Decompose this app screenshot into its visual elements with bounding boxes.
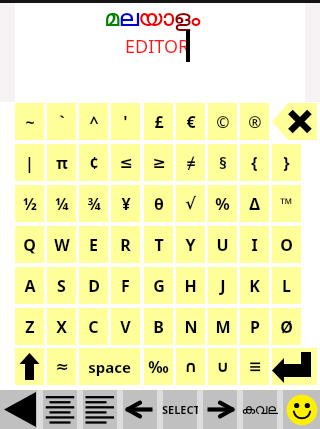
button[interactable]: ¼ bbox=[47, 185, 76, 222]
button[interactable]: P bbox=[240, 308, 269, 345]
button[interactable]: E bbox=[79, 226, 108, 263]
button[interactable]: § bbox=[208, 144, 237, 181]
button[interactable]: C bbox=[79, 308, 108, 345]
staticText: θ bbox=[154, 193, 164, 215]
staticText: £ bbox=[154, 111, 164, 133]
button[interactable]: ~ bbox=[15, 103, 44, 140]
button[interactable]: R bbox=[111, 226, 140, 263]
button[interactable]: Enter bbox=[272, 348, 317, 385]
staticText: space bbox=[88, 357, 131, 377]
button[interactable]: ≡ bbox=[240, 348, 269, 385]
staticText: കവല bbox=[242, 403, 278, 417]
button[interactable]: ≥ bbox=[144, 144, 173, 181]
button[interactable]: Shift bbox=[15, 348, 44, 385]
staticText: ½ bbox=[23, 193, 37, 215]
button[interactable]: A bbox=[15, 267, 44, 304]
button[interactable]: ∪ bbox=[208, 348, 237, 385]
button[interactable]: ½ bbox=[15, 185, 44, 222]
button[interactable]: space bbox=[79, 348, 140, 385]
button[interactable]: SELECT bbox=[162, 390, 198, 429]
staticText: ` bbox=[59, 111, 65, 133]
button[interactable]: S bbox=[47, 267, 76, 304]
button[interactable]: ™ bbox=[272, 185, 301, 222]
staticText: C bbox=[88, 316, 99, 338]
staticText: K bbox=[249, 275, 260, 297]
button[interactable]: K bbox=[240, 267, 269, 304]
button[interactable]: £ bbox=[144, 103, 173, 140]
button[interactable]: H bbox=[176, 267, 205, 304]
button[interactable]: X bbox=[47, 308, 76, 345]
button[interactable]: € bbox=[176, 103, 205, 140]
button[interactable]: W bbox=[47, 226, 76, 263]
staticText: ® bbox=[248, 111, 262, 133]
staticText: V bbox=[120, 316, 131, 338]
button[interactable]: ^ bbox=[79, 103, 108, 140]
button[interactable]: Move left bbox=[122, 390, 158, 429]
staticText: M bbox=[215, 316, 231, 338]
staticText: Y bbox=[185, 234, 196, 256]
button[interactable]: ¢ bbox=[79, 144, 108, 181]
button[interactable]: Move right bbox=[202, 390, 238, 429]
button[interactable]: Ø bbox=[272, 308, 301, 345]
button[interactable]: Align left bbox=[82, 390, 118, 429]
staticText: π bbox=[56, 152, 68, 174]
staticText: H bbox=[184, 275, 197, 297]
button[interactable]: ‰ bbox=[144, 348, 173, 385]
button[interactable]: Backspace bbox=[272, 103, 317, 140]
button[interactable]: ¥ bbox=[111, 185, 140, 222]
staticText: } bbox=[283, 152, 290, 174]
staticText: P bbox=[250, 316, 260, 338]
button[interactable]: ® bbox=[240, 103, 269, 140]
staticText: ∪ bbox=[216, 357, 229, 376]
button[interactable]: G bbox=[144, 267, 173, 304]
button[interactable]: Y bbox=[176, 226, 205, 263]
button[interactable]: % bbox=[208, 185, 237, 222]
button[interactable]: √ bbox=[176, 185, 205, 222]
button[interactable]: Back bbox=[0, 390, 38, 429]
button[interactable]: © bbox=[208, 103, 237, 140]
staticText: I bbox=[251, 234, 258, 256]
button[interactable]: Z bbox=[15, 308, 44, 345]
staticText: ¼ bbox=[55, 193, 69, 215]
button[interactable]: | bbox=[15, 144, 44, 181]
button[interactable]: ≠ bbox=[176, 144, 205, 181]
staticText: ^ bbox=[89, 111, 99, 133]
button[interactable]: { bbox=[240, 144, 269, 181]
button[interactable]: ∩ bbox=[176, 348, 205, 385]
button[interactable]: ≤ bbox=[111, 144, 140, 181]
staticText: N bbox=[184, 316, 198, 338]
button[interactable]: M bbox=[208, 308, 237, 345]
staticText: Z bbox=[25, 316, 35, 338]
staticText: ≥ bbox=[152, 153, 166, 172]
button[interactable]: V bbox=[111, 308, 140, 345]
button[interactable]: O bbox=[272, 226, 301, 263]
staticText: T bbox=[154, 234, 164, 256]
button[interactable]: ¾ bbox=[79, 185, 108, 222]
staticText: ≤ bbox=[119, 153, 133, 172]
staticText: S bbox=[57, 275, 66, 297]
button[interactable]: } bbox=[272, 144, 301, 181]
button[interactable]: Q bbox=[15, 226, 44, 263]
staticText: Q bbox=[23, 234, 36, 256]
staticText: | bbox=[25, 152, 34, 174]
staticText: X bbox=[56, 316, 67, 338]
button[interactable]: ` bbox=[47, 103, 76, 140]
button[interactable]: N bbox=[176, 308, 205, 345]
button[interactable]: θ bbox=[144, 185, 173, 222]
button[interactable]: B bbox=[144, 308, 173, 345]
button[interactable]: Align center bbox=[42, 390, 78, 429]
button[interactable]: Δ bbox=[240, 185, 269, 222]
button[interactable]: കവല bbox=[242, 390, 278, 429]
button[interactable]: J bbox=[208, 267, 237, 304]
staticText: ™ bbox=[280, 193, 293, 215]
button[interactable]: D bbox=[79, 267, 108, 304]
button[interactable]: ' bbox=[111, 103, 140, 140]
button[interactable]: ≈ bbox=[47, 348, 76, 385]
button[interactable]: I bbox=[240, 226, 269, 263]
button[interactable]: π bbox=[47, 144, 76, 181]
button[interactable]: L bbox=[272, 267, 301, 304]
button[interactable]: T bbox=[144, 226, 173, 263]
button[interactable]: Emoji bbox=[282, 390, 320, 429]
button[interactable]: U bbox=[208, 226, 237, 263]
button[interactable]: F bbox=[111, 267, 140, 304]
